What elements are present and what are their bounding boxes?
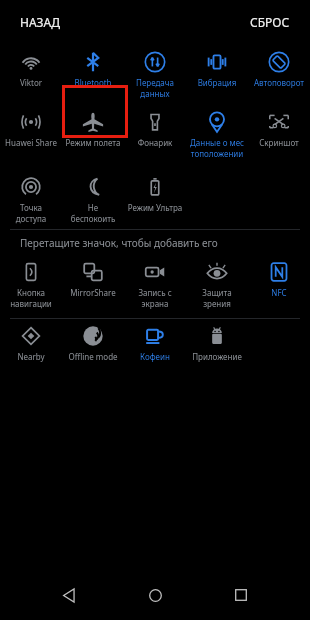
button[interactable]: Приложение <box>186 324 248 362</box>
staticText: Кофеин <box>124 351 186 362</box>
staticText: Автоповорот <box>248 77 310 88</box>
staticText: Скриншот <box>248 137 310 148</box>
button[interactable]: Не беспокоить <box>62 175 124 224</box>
button[interactable]: СБРОС <box>250 14 290 30</box>
button[interactable]: Viktor <box>0 50 62 88</box>
staticText: Точка доступа <box>0 202 62 224</box>
button[interactable]: Передача данных <box>124 50 186 99</box>
button[interactable]: Запись с экрана <box>124 260 186 309</box>
staticText: Кнопка навигации <box>0 287 62 309</box>
staticText: Huawei Share <box>0 137 62 148</box>
button[interactable]: Кофеин <box>124 324 186 362</box>
button[interactable]: Recent apps <box>198 570 284 620</box>
staticText: Приложение <box>186 351 248 362</box>
button[interactable]: Offline mode <box>62 324 124 362</box>
button[interactable]: Скриншот <box>248 110 310 148</box>
staticText: MirrorShare <box>62 287 124 298</box>
button[interactable]: NFC <box>248 260 310 298</box>
button[interactable]: Nearby <box>0 324 62 362</box>
button[interactable]: НАЗАД <box>20 14 60 30</box>
button[interactable]: Режим Ультра <box>124 175 186 213</box>
button[interactable]: MirrorShare <box>62 260 124 298</box>
button[interactable]: Защита зрения <box>186 260 248 309</box>
staticText: Защита зрения <box>186 287 248 309</box>
button[interactable]: Автоповорот <box>248 50 310 88</box>
staticText: Bluetooth <box>62 77 124 88</box>
staticText: Вибрация <box>186 77 248 88</box>
button[interactable]: Home <box>112 570 198 620</box>
staticText: Nearby <box>0 351 62 362</box>
button[interactable]: Данные о мес тоположении <box>186 110 248 159</box>
button[interactable]: Bluetooth <box>62 50 124 88</box>
button[interactable]: Back <box>26 570 112 620</box>
button[interactable]: Фонарик <box>124 110 186 148</box>
staticText: НАЗАД <box>20 14 60 30</box>
button[interactable]: Вибрация <box>186 50 248 88</box>
staticText: Перетащите значок, чтобы добавить его <box>20 236 218 250</box>
staticText: Фонарик <box>124 137 186 148</box>
staticText: Передача данных <box>124 77 186 99</box>
staticText: Данные о мес тоположении <box>186 137 248 159</box>
button[interactable]: Кнопка навигации <box>0 260 62 309</box>
staticText: СБРОС <box>250 14 290 30</box>
staticText: Не беспокоить <box>62 202 124 224</box>
staticText: Offline mode <box>62 351 124 362</box>
button[interactable]: Точка доступа <box>0 175 62 224</box>
staticText: Режим полета <box>62 137 124 148</box>
button[interactable]: Режим полета <box>62 110 124 148</box>
staticText: Запись с экрана <box>124 287 186 309</box>
button[interactable]: Huawei Share <box>0 110 62 148</box>
staticText: Viktor <box>0 77 62 88</box>
staticText: NFC <box>248 287 310 298</box>
staticText: Режим Ультра <box>124 202 186 213</box>
